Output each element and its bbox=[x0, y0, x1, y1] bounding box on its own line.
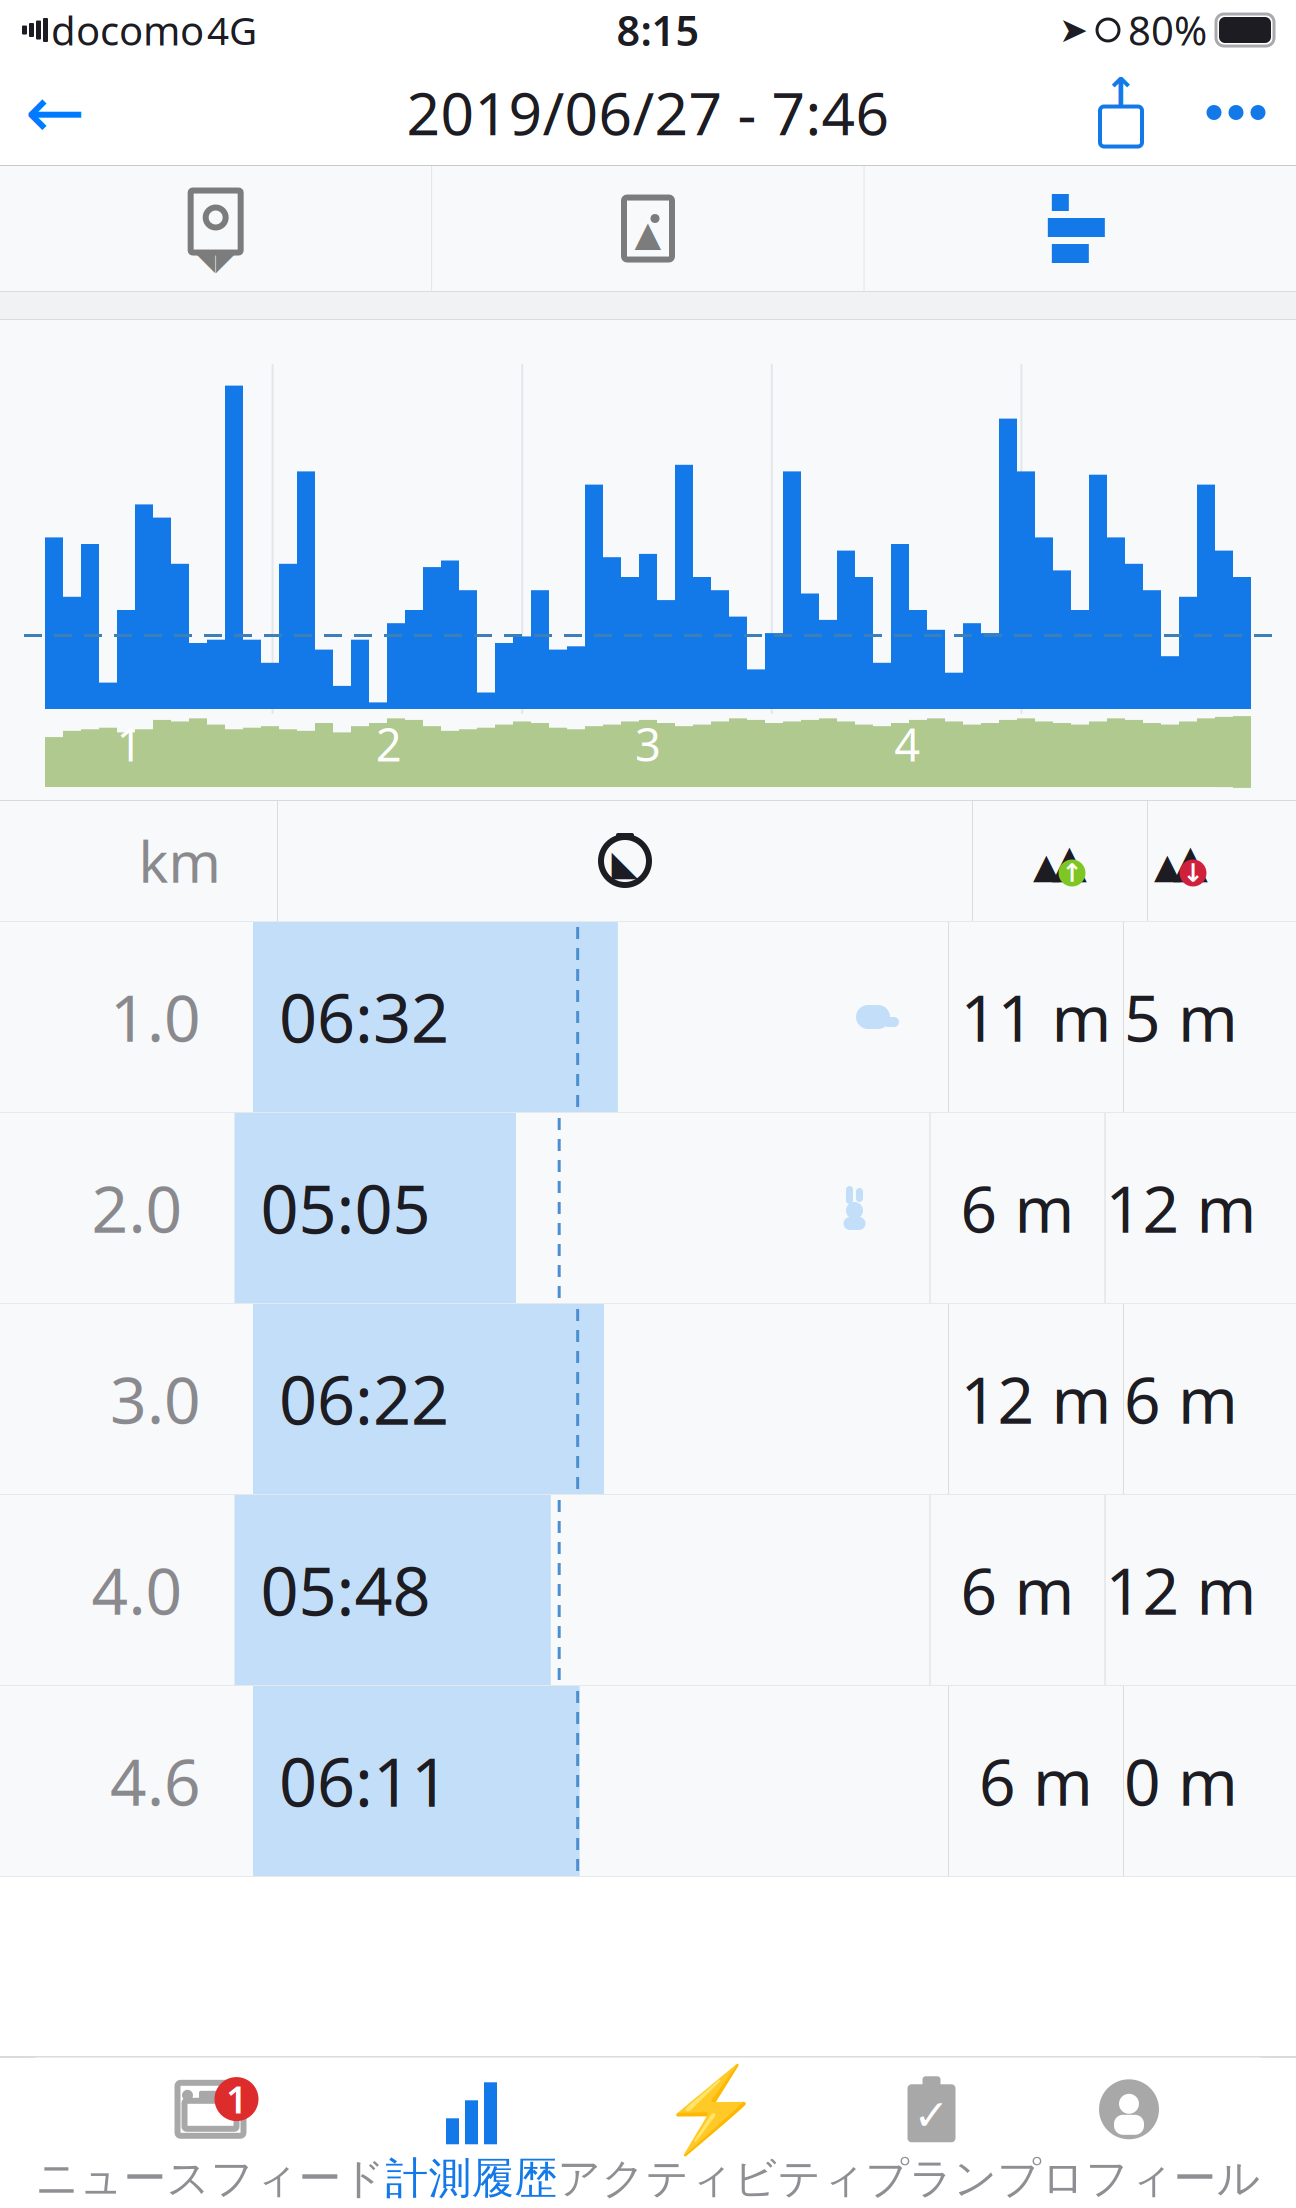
button[interactable]: 計測履歴 bbox=[385, 2057, 557, 2207]
staticText: 計測履歴 bbox=[385, 2152, 557, 2205]
staticText: 6 m bbox=[1124, 1356, 1238, 1441]
staticText: アクティビティ bbox=[557, 2152, 865, 2205]
staticText: 06:22 bbox=[279, 1355, 449, 1443]
button[interactable]: More options bbox=[1176, 62, 1296, 162]
staticText: 4G bbox=[207, 4, 257, 56]
button[interactable]: Map bbox=[0, 166, 431, 291]
staticText: 0 m bbox=[1124, 1738, 1238, 1823]
staticText: ⚡ bbox=[660, 2062, 763, 2157]
staticText: 12 m bbox=[1105, 1547, 1256, 1632]
staticText: 1 bbox=[117, 714, 143, 774]
button[interactable]: Share bbox=[1066, 62, 1176, 162]
staticText: 6 m bbox=[979, 1738, 1093, 1823]
staticText: docomo bbox=[51, 3, 204, 56]
staticText: 05:48 bbox=[260, 1546, 430, 1634]
staticText: ▲ bbox=[634, 214, 661, 253]
staticText: ↑ bbox=[1061, 859, 1082, 887]
staticText: ◣ bbox=[611, 843, 638, 883]
staticText: ↓ bbox=[1182, 859, 1203, 887]
staticText: 3.0 bbox=[110, 1356, 201, 1441]
staticText: ✓ bbox=[913, 2091, 949, 2139]
staticText: プロフィール bbox=[997, 2152, 1260, 2205]
button[interactable]: Back bbox=[0, 62, 110, 162]
staticText: ◥ bbox=[193, 243, 216, 276]
staticText: 6 m bbox=[960, 1547, 1074, 1632]
staticText: ◤ bbox=[216, 243, 239, 276]
staticText: 2 bbox=[376, 714, 402, 774]
button[interactable]: Charts bbox=[865, 166, 1296, 291]
staticText: 1.0 bbox=[110, 974, 201, 1059]
staticText: km bbox=[138, 824, 220, 898]
staticText: 06:11 bbox=[279, 1737, 449, 1825]
staticText: 1 bbox=[226, 2074, 247, 2124]
staticText: ← bbox=[25, 72, 85, 153]
staticText: 80% bbox=[1128, 3, 1207, 56]
staticText: 4.0 bbox=[91, 1547, 182, 1632]
button[interactable]: Photos bbox=[432, 166, 864, 291]
staticText: 06:32 bbox=[279, 973, 449, 1061]
staticText: 3 bbox=[635, 714, 661, 774]
staticText: ▲ bbox=[1173, 835, 1208, 887]
button[interactable]: 1 bbox=[35, 2057, 385, 2207]
staticText: 11 m bbox=[960, 974, 1111, 1059]
staticText: 4 bbox=[894, 714, 920, 774]
button[interactable]: ✓ bbox=[865, 2057, 997, 2207]
staticText: 12 m bbox=[960, 1356, 1111, 1441]
staticText: 6 m bbox=[960, 1165, 1074, 1250]
staticText: 05:05 bbox=[260, 1164, 430, 1252]
staticText: 12 m bbox=[1105, 1165, 1256, 1250]
button[interactable]: プロフィール bbox=[997, 2057, 1260, 2207]
staticText: ▲ bbox=[1033, 846, 1060, 886]
staticText: ↑ bbox=[1104, 70, 1138, 115]
staticText: ニュースフィード bbox=[35, 2152, 385, 2205]
staticText: 2.0 bbox=[91, 1165, 182, 1250]
staticText: 2019/06/27 - 7:46 bbox=[406, 73, 889, 151]
button[interactable]: ⚡ bbox=[557, 2057, 865, 2207]
staticText: 5 m bbox=[1124, 974, 1238, 1059]
staticText: プラン bbox=[865, 2152, 997, 2205]
staticText: 8:15 bbox=[616, 3, 699, 57]
staticText: ➤ bbox=[1059, 10, 1088, 50]
staticText: ▲ bbox=[1154, 846, 1181, 886]
staticText: ▲ bbox=[1052, 835, 1087, 887]
staticText: 4.6 bbox=[110, 1738, 201, 1823]
